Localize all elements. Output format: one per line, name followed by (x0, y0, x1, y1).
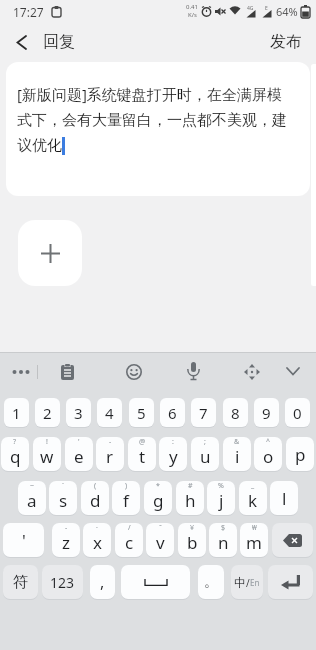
staticText: r (106, 445, 114, 468)
button[interactable]: ! (33, 437, 61, 471)
button[interactable]: / (115, 523, 143, 557)
button[interactable]: 123 (42, 565, 83, 599)
staticText: ! (46, 437, 48, 447)
staticText: 17:27 (13, 4, 44, 20)
button[interactable]: @ (128, 437, 156, 471)
button[interactable]: [新版问题]系统键盘打开时，在全满屏模 式下，会有大量留白，一点都不美观，建 议… (6, 62, 310, 196)
staticText: _ (251, 481, 255, 491)
button[interactable]: ' (65, 437, 93, 471)
staticText: ; (204, 437, 206, 447)
staticText: 中 (234, 575, 246, 590)
staticText: i (235, 445, 240, 468)
button[interactable] (60, 364, 75, 380)
button[interactable]: 4 (97, 398, 122, 427)
staticText: p (295, 443, 306, 466)
staticText: ` (62, 481, 64, 491)
button[interactable]: 1 (4, 398, 29, 427)
button[interactable]: % (207, 481, 235, 515)
button[interactable]: , (90, 565, 115, 599)
button[interactable]: 0 (285, 398, 310, 427)
button[interactable] (243, 363, 261, 381)
button[interactable]: ` (49, 481, 77, 515)
button[interactable]: ) (112, 481, 140, 515)
button[interactable]: 发布 (270, 32, 316, 52)
button[interactable]: * (144, 481, 172, 515)
button[interactable]: 5 (129, 398, 154, 427)
staticText: · (96, 523, 98, 533)
staticText: $ (221, 523, 226, 533)
staticText: ' (22, 529, 26, 552)
button[interactable]: 8 (223, 398, 248, 427)
button[interactable]: _ (239, 481, 267, 515)
button[interactable]: p (286, 437, 314, 471)
staticText: @ (139, 437, 146, 447)
button[interactable]: - (52, 523, 80, 557)
staticText: 7 (199, 403, 208, 423)
staticText: / (246, 576, 250, 590)
staticText: 9 (262, 403, 271, 423)
staticText: c (125, 531, 134, 554)
button[interactable]: 9 (254, 398, 279, 427)
button[interactable] (12, 370, 30, 374)
staticText: y (169, 445, 178, 468)
staticText: m (246, 531, 262, 554)
staticText: g (153, 489, 164, 512)
button[interactable]: ( (81, 481, 109, 515)
button[interactable]: ~ (18, 481, 46, 515)
staticText: ¥ (190, 523, 195, 533)
button[interactable]: ₩ (240, 523, 268, 557)
staticText: En (250, 577, 260, 588)
button[interactable]: - (96, 437, 124, 471)
staticText: u (200, 445, 211, 468)
button[interactable]: l (270, 481, 298, 515)
staticText: & (234, 437, 240, 447)
button[interactable]: ˇ (146, 523, 174, 557)
staticText: % (218, 481, 224, 491)
staticText: n (218, 531, 229, 554)
button[interactable]: $ (209, 523, 237, 557)
button[interactable]: ; (191, 437, 219, 471)
staticText: ˇ (159, 523, 162, 533)
button[interactable] (272, 523, 313, 557)
button[interactable]: : (159, 437, 187, 471)
staticText: 4 (105, 403, 114, 423)
staticText: 6 (168, 403, 177, 423)
button[interactable]: 中 (231, 565, 263, 599)
button[interactable]: · (83, 523, 111, 557)
staticText: ( (94, 481, 97, 491)
staticText: ) (125, 481, 128, 491)
button[interactable]: 回复 (0, 32, 75, 52)
button[interactable]: 3 (66, 398, 91, 427)
button[interactable] (187, 362, 200, 381)
staticText: j (219, 489, 224, 512)
button[interactable]: ' (3, 523, 44, 557)
staticText: 回复 (43, 32, 75, 52)
button[interactable] (268, 565, 313, 599)
button[interactable]: 符 (3, 565, 38, 599)
staticText: 5 (137, 403, 146, 423)
staticText: f (123, 489, 129, 512)
button[interactable]: 7 (191, 398, 216, 427)
button[interactable] (286, 367, 300, 376)
button[interactable] (121, 565, 190, 599)
button[interactable]: 6 (160, 398, 185, 427)
staticText: q (10, 445, 21, 468)
staticText: t (139, 445, 146, 468)
staticText: e (74, 445, 84, 468)
button[interactable] (126, 364, 142, 380)
button[interactable]: & (223, 437, 251, 471)
button[interactable]: ? (1, 437, 29, 471)
button[interactable]: ^ (254, 437, 282, 471)
staticText: 符 (13, 573, 28, 592)
button[interactable]: 。 (198, 565, 224, 599)
staticText: , (100, 571, 105, 593)
button[interactable]: # (176, 481, 204, 515)
staticText: E (265, 5, 268, 12)
staticText: 123 (50, 573, 75, 592)
button[interactable]: ¥ (178, 523, 206, 557)
staticText: d (90, 489, 101, 512)
staticText: o (263, 445, 274, 468)
staticText: ? (13, 437, 17, 447)
button[interactable] (18, 220, 82, 286)
button[interactable]: 2 (35, 398, 60, 427)
